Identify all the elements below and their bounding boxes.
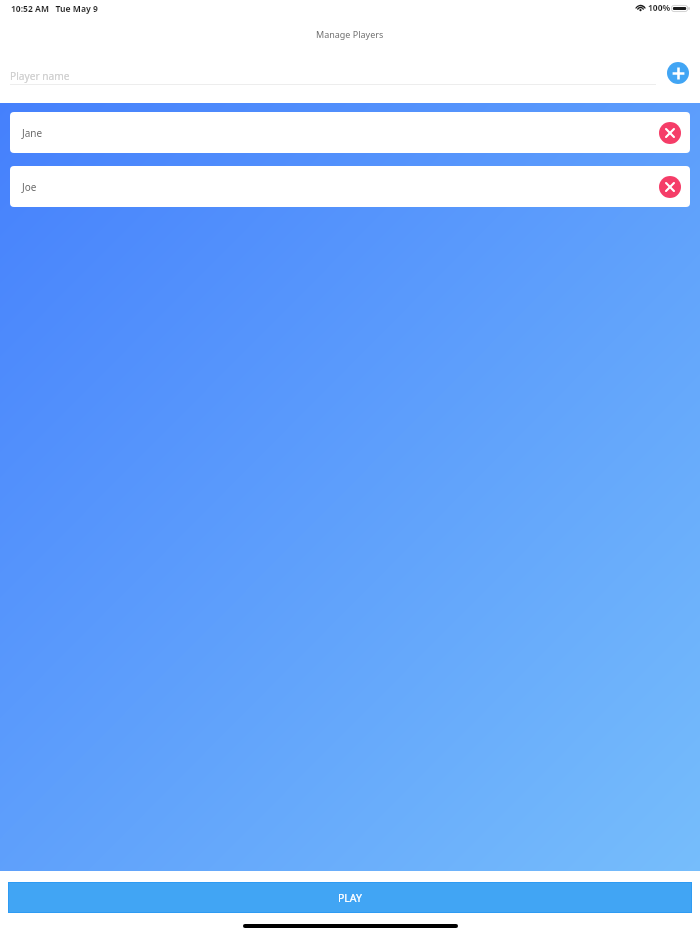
- staticText: Player name: [10, 69, 70, 83]
- staticText: Jane: [22, 126, 43, 140]
- button[interactable]: Add player: [667, 62, 689, 84]
- button[interactable]: Remove Joe: [659, 176, 681, 198]
- button[interactable]: Player name: [10, 60, 656, 85]
- staticText: PLAY: [338, 891, 362, 905]
- button[interactable]: Remove Jane: [659, 122, 681, 144]
- button[interactable]: Jane: [10, 112, 690, 153]
- staticText: Joe: [22, 180, 37, 194]
- staticText: 10:52 AM Tue May 9: [11, 3, 98, 15]
- staticText: 100%: [648, 2, 671, 14]
- button[interactable]: Joe: [10, 166, 690, 207]
- staticText: Manage Players: [316, 28, 384, 40]
- button[interactable]: PLAY: [8, 882, 692, 913]
